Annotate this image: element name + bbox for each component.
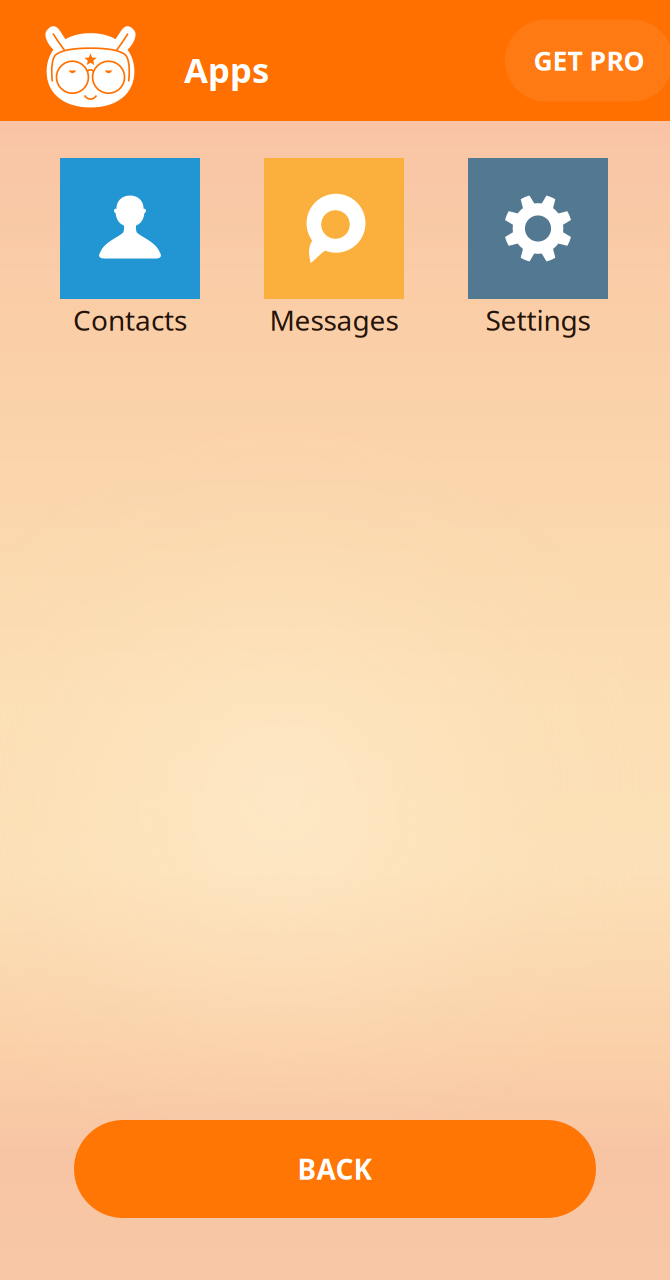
staticText: Messages [269,301,398,339]
staticText: Apps [184,46,269,92]
staticText: Contacts [73,301,187,339]
staticText: Settings [485,301,590,339]
staticText: BACK [297,1150,372,1188]
button[interactable]: Settings [468,158,608,341]
staticText: GET PRO [533,43,644,78]
button[interactable]: Contacts [60,158,200,341]
button[interactable]: Messages [264,158,404,341]
button[interactable]: GET PRO [505,19,670,101]
button[interactable]: BACK [74,1120,596,1218]
